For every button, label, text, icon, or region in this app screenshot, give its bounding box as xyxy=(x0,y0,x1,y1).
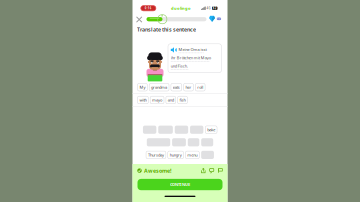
button[interactable]: Thursday xyxy=(146,151,166,159)
button[interactable]: Close lesson xyxy=(134,15,144,24)
staticText: bake xyxy=(207,127,215,132)
button[interactable]: Meine Oma isst xyxy=(179,47,207,53)
button[interactable]: her xyxy=(184,83,193,91)
button[interactable]: with xyxy=(137,96,148,104)
button[interactable]: bake xyxy=(205,126,217,133)
staticText: My xyxy=(139,84,145,90)
staticText: 4G xyxy=(207,6,211,10)
staticText: menu xyxy=(187,152,197,157)
staticText: hungry xyxy=(170,152,182,157)
staticText: with xyxy=(139,97,146,103)
button[interactable]: hungry xyxy=(168,151,183,159)
staticText: eats xyxy=(173,84,180,90)
staticText: 82 xyxy=(213,6,217,10)
staticText: grandma xyxy=(151,84,167,90)
staticText: fish xyxy=(179,97,185,103)
button[interactable]: roll xyxy=(195,83,205,91)
staticText: duolingo xyxy=(171,5,191,11)
staticText: Meine Oma isst xyxy=(179,47,207,52)
button[interactable]: mayo xyxy=(150,96,164,104)
button[interactable]: Share xyxy=(201,168,205,173)
button[interactable]: and xyxy=(166,96,176,104)
staticText: roll xyxy=(197,84,203,90)
staticText: CONTINUE xyxy=(170,182,190,187)
button[interactable]: ihr Brötchen mit Mayo xyxy=(171,55,211,61)
button[interactable]: fish xyxy=(178,96,187,104)
staticText: and xyxy=(168,97,174,103)
button[interactable]: Report xyxy=(218,168,222,173)
button[interactable]: My xyxy=(137,83,147,91)
staticText: her xyxy=(185,84,191,90)
staticText: Awesome! xyxy=(144,167,172,174)
button[interactable]: Comment xyxy=(209,168,214,173)
button[interactable]: menu xyxy=(185,151,199,159)
staticText: Translate this sentence xyxy=(137,26,196,33)
button[interactable]: und Fisch. xyxy=(171,63,188,70)
button[interactable]: grandma xyxy=(149,83,169,91)
button[interactable]: CONTINUE xyxy=(137,179,222,190)
staticText: 0:16 xyxy=(145,6,152,10)
staticText: und Fisch. xyxy=(171,63,188,69)
staticText: Thursday xyxy=(148,152,164,157)
staticText: mayo xyxy=(152,97,162,103)
button[interactable]: eats xyxy=(171,83,182,91)
staticText: ihr Brötchen mit Mayo xyxy=(171,55,211,60)
